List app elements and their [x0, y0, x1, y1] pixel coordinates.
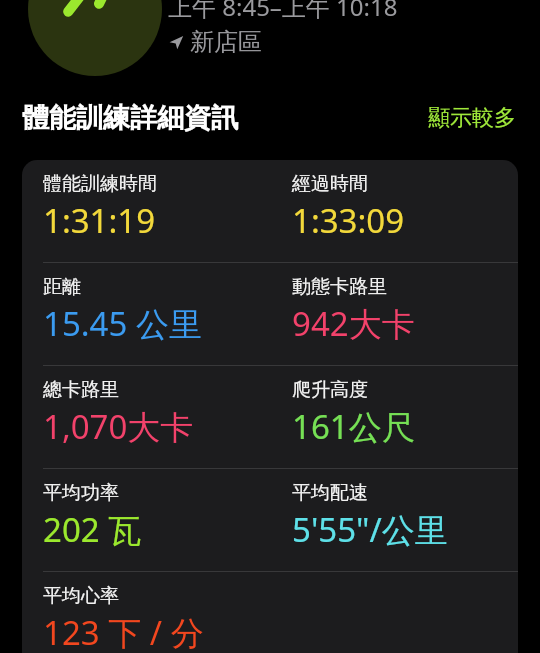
- staticText: 動態卡路里: [292, 275, 387, 299]
- staticText: 123 下 / 分: [43, 610, 204, 653]
- button[interactable]: 平均心率: [22, 572, 518, 653]
- staticText: 新店區: [190, 27, 262, 57]
- staticText: 平均配速: [292, 481, 368, 505]
- staticText: 5'55"/公里: [292, 507, 448, 552]
- staticText: 1:31:19: [43, 198, 156, 243]
- staticText: 202 瓦: [43, 507, 142, 552]
- staticText: 161公尺: [292, 404, 415, 449]
- staticText: 總卡路里: [43, 378, 119, 402]
- button[interactable]: 總卡路里: [22, 366, 518, 468]
- button[interactable]: 顯示較多: [426, 100, 518, 136]
- staticText: 距離: [43, 275, 81, 299]
- staticText: 1:33:09: [292, 198, 405, 243]
- staticText: 平均心率: [43, 584, 119, 608]
- staticText: 上午 8:45–上午 10:18: [168, 0, 398, 23]
- staticText: 顯示較多: [428, 104, 516, 132]
- staticText: 942大卡: [292, 301, 415, 346]
- staticText: 爬升高度: [292, 378, 368, 402]
- staticText: 平均功率: [43, 481, 119, 505]
- button[interactable]: 距離: [22, 263, 518, 365]
- button[interactable]: 體能訓練時間: [22, 160, 518, 262]
- staticText: 經過時間: [292, 172, 368, 196]
- staticText: 1,070大卡: [43, 404, 194, 449]
- button[interactable]: 平均功率: [22, 469, 518, 571]
- staticText: 體能訓練時間: [43, 172, 157, 196]
- staticText: 15.45 公里: [43, 301, 202, 346]
- staticText: 體能訓練詳細資訊: [22, 101, 426, 135]
